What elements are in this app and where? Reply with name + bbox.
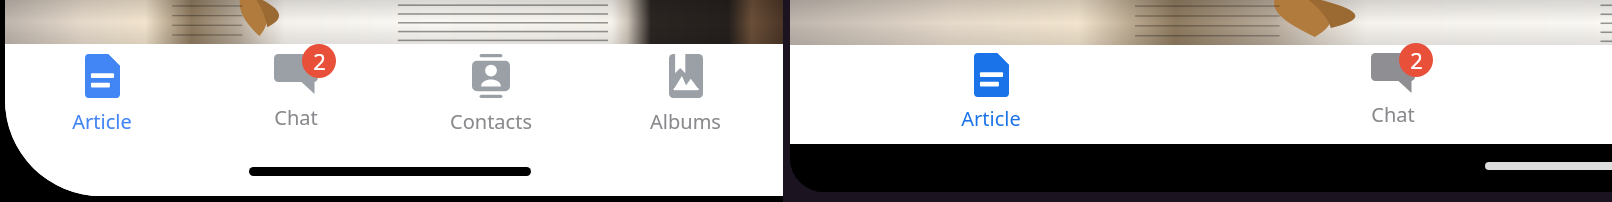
staticText: Chat bbox=[1371, 101, 1415, 128]
staticText: Contacts bbox=[450, 108, 532, 135]
button[interactable]: Chat bbox=[199, 54, 393, 131]
button[interactable]: Chat bbox=[1192, 53, 1593, 128]
staticText: Albums bbox=[650, 108, 721, 135]
button[interactable]: Albums bbox=[588, 54, 783, 135]
button[interactable]: Article bbox=[5, 54, 199, 135]
staticText: Article bbox=[72, 108, 132, 135]
staticText: Chat bbox=[274, 104, 318, 131]
button[interactable]: Contacts bbox=[393, 54, 588, 135]
button[interactable]: Article bbox=[790, 53, 1192, 132]
staticText: Article bbox=[961, 105, 1021, 132]
staticText: 2 bbox=[1410, 45, 1423, 75]
staticText: 2 bbox=[313, 46, 326, 76]
